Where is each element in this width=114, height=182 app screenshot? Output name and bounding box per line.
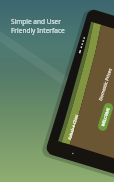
staticText: Simple and User Friendly Interface	[11, 17, 65, 35]
